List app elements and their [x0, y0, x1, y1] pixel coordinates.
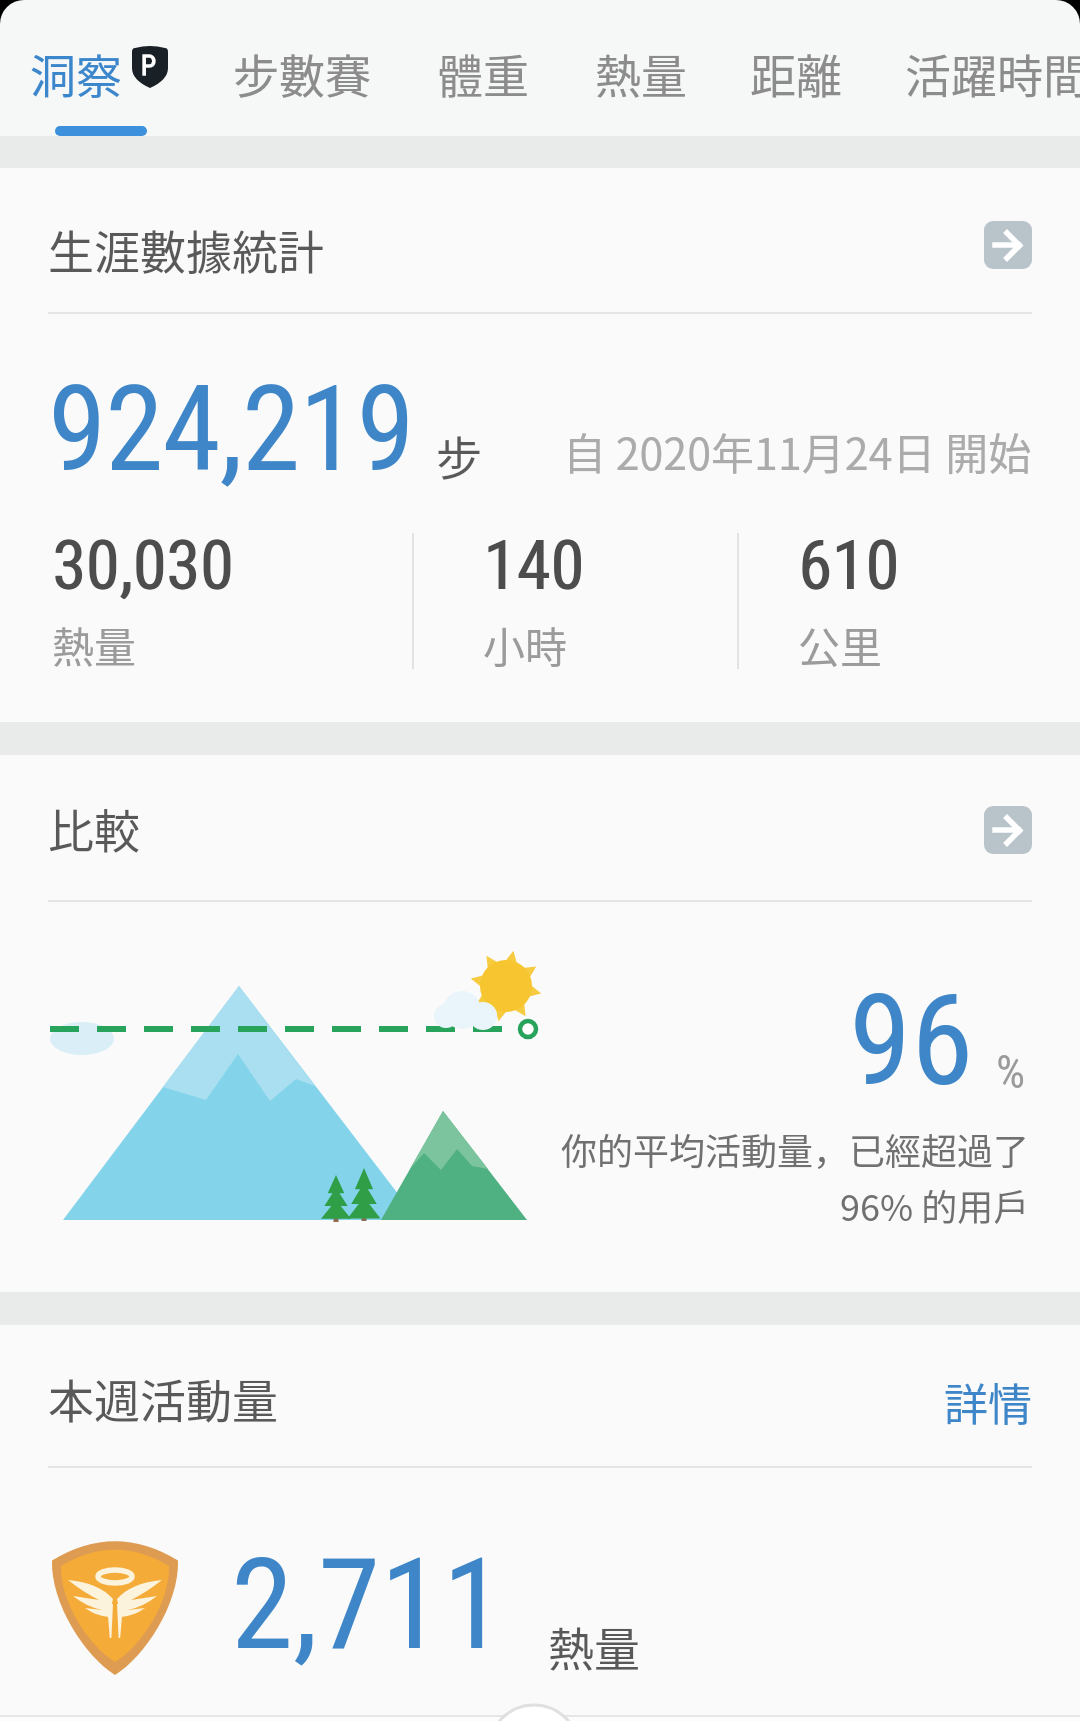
staticText: %: [996, 1045, 1026, 1099]
staticText: 熱量: [595, 40, 687, 107]
button[interactable]: [585, 30, 700, 105]
staticText: 你的平均活動量，已經超過了: [561, 1123, 1030, 1175]
button[interactable]: [20, 30, 170, 105]
button[interactable]: [740, 30, 855, 105]
button[interactable]: [223, 30, 383, 105]
staticText: 610: [799, 526, 900, 606]
staticText: 公里: [798, 614, 883, 675]
staticText: 140: [484, 526, 585, 606]
button[interactable]: [984, 806, 1032, 854]
staticText: P: [141, 50, 156, 82]
staticText: 96: [849, 967, 974, 1115]
staticText: 小時: [483, 614, 568, 675]
staticText: 30,030: [52, 526, 234, 606]
staticText: 610: [798, 526, 899, 606]
staticText: 步: [436, 422, 482, 489]
staticText: 距離: [750, 40, 842, 107]
staticText: 自 2020年11月24日 開始: [563, 420, 1032, 482]
staticText: 體重: [437, 40, 529, 107]
button[interactable]: [42, 1520, 188, 1685]
staticText: 熱量: [52, 614, 137, 675]
staticText: 2,711: [231, 1531, 505, 1679]
button[interactable]: [895, 30, 1080, 105]
staticText: 洞察: [30, 40, 122, 107]
staticText: 詳情: [944, 1370, 1032, 1434]
staticText: 生涯數據統計: [48, 216, 324, 283]
staticText: 活躍時間: [905, 40, 1080, 107]
staticText: 30,030: [53, 526, 235, 606]
staticText: 步數賽: [233, 40, 371, 107]
staticText: 比較: [48, 795, 140, 862]
staticText: 140: [483, 526, 584, 606]
staticText: 熱量: [548, 1613, 640, 1680]
staticText: 96% 的用戶: [840, 1179, 1030, 1231]
staticText: 924,219: [48, 361, 414, 499]
button[interactable]: [984, 221, 1032, 269]
button[interactable]: [900, 1360, 1050, 1425]
staticText: 本週活動量: [48, 1365, 278, 1432]
button[interactable]: [427, 30, 542, 105]
